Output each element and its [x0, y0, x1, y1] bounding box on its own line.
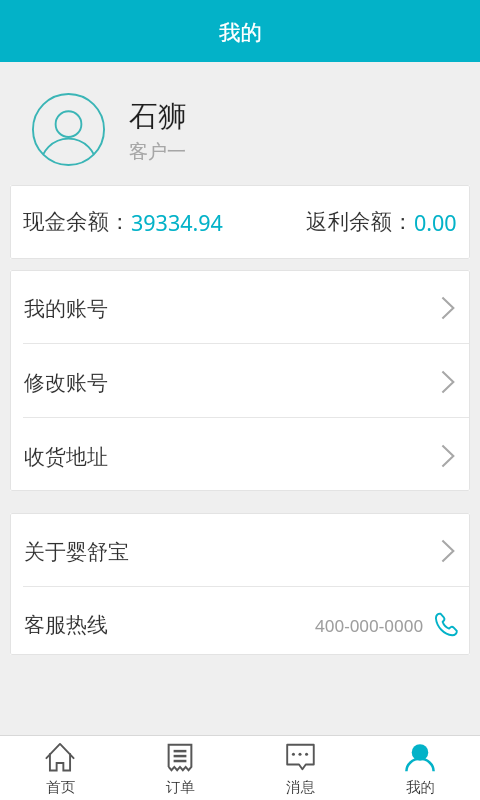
button[interactable]: 我的账号	[10, 270, 470, 344]
staticText: 首页	[46, 778, 75, 796]
button[interactable]: 订单	[120, 736, 240, 800]
staticText: 订单	[166, 778, 195, 796]
other: Call customer service	[434, 612, 458, 636]
staticText: 400-000-0000	[315, 614, 424, 637]
staticText: 0.00	[414, 208, 457, 237]
staticText: 我的账号	[24, 296, 108, 322]
staticText: 关于婴舒宝	[24, 539, 129, 565]
button[interactable]: 客服热线	[10, 587, 470, 655]
staticText: 修改账号	[24, 370, 108, 396]
staticText: 客服热线	[24, 612, 108, 638]
button[interactable]: 我的	[360, 736, 480, 800]
staticText: 石狮	[129, 98, 187, 135]
staticText: 39334.94	[131, 208, 223, 237]
staticText: 我的	[219, 19, 262, 46]
staticText: 我的	[406, 778, 435, 796]
staticText: 返利余额：	[306, 208, 414, 235]
staticText: 客户一	[129, 140, 186, 164]
button[interactable]: 消息	[240, 736, 360, 800]
button[interactable]: 修改账号	[10, 344, 470, 418]
staticText: 收货地址	[24, 444, 108, 470]
button[interactable]: 关于婴舒宝	[10, 513, 470, 587]
button[interactable]: 首页	[0, 736, 120, 800]
button[interactable]: 收货地址	[10, 418, 470, 491]
staticText: 现金余额：	[23, 208, 131, 235]
staticText: 消息	[286, 778, 315, 796]
